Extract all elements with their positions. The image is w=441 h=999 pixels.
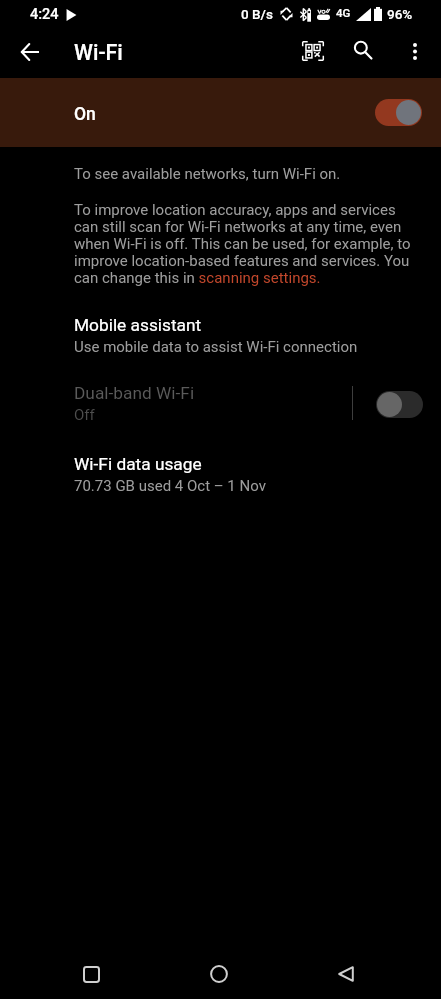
button[interactable]: Back (8, 29, 52, 73)
staticText: 0 B/s (241, 6, 273, 22)
staticText: 70.73 GB used 4 Oct – 1 Nov (74, 477, 266, 495)
staticText: Use mobile data to assist Wi-Fi connecti… (74, 338, 358, 356)
staticText: On (74, 104, 96, 125)
staticText: Wi-Fi (74, 40, 123, 65)
button[interactable]: More options (392, 28, 438, 74)
staticText: Dual-band Wi-Fi (74, 383, 195, 403)
button[interactable]: Mobile assistant (0, 309, 441, 366)
staticText: To see available networks, turn Wi-Fi on… (74, 165, 341, 183)
button[interactable]: Wi-Fi data usage (0, 448, 441, 505)
button[interactable]: Scan QR code (290, 28, 336, 74)
button[interactable]: Back (300, 946, 391, 999)
staticText: Off (74, 406, 95, 424)
button[interactable]: Dual-band Wi-Fi toggle (376, 391, 423, 418)
staticText: 4G (336, 6, 351, 19)
button[interactable]: On (0, 78, 441, 147)
staticText: Mobile assistant (74, 315, 202, 335)
button[interactable]: Recent apps (46, 946, 137, 999)
button[interactable]: Home (173, 946, 264, 999)
staticText: Wi-Fi data usage (74, 454, 202, 474)
staticText: 4:24 (30, 6, 59, 23)
staticText: 96% (387, 6, 413, 22)
staticText: To improve location accuracy, apps and s… (74, 201, 414, 286)
button[interactable]: Search (340, 27, 386, 73)
